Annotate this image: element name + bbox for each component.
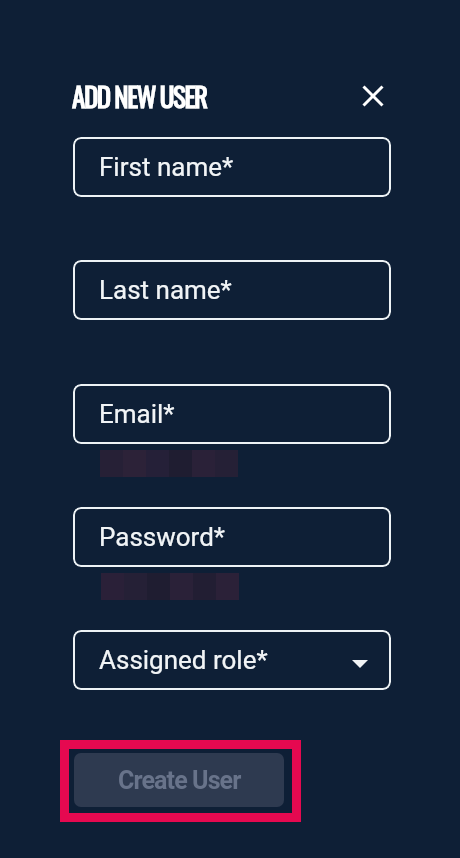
button[interactable]: Email* (73, 384, 391, 444)
staticText: Password* (99, 522, 226, 552)
staticText: ADD NEW USER (72, 76, 207, 116)
button[interactable]: Password* (73, 507, 391, 567)
staticText: Create User (118, 766, 241, 795)
button[interactable]: Create User (74, 753, 284, 807)
staticText: Last name* (99, 275, 232, 305)
staticText: Assigned role* (99, 645, 268, 675)
button[interactable]: Assigned role* (73, 630, 391, 690)
button[interactable]: First name* (73, 137, 391, 197)
staticText: First name* (99, 152, 234, 182)
button[interactable]: Last name* (73, 260, 391, 320)
button[interactable] (357, 80, 389, 112)
staticText: Email* (99, 399, 175, 429)
